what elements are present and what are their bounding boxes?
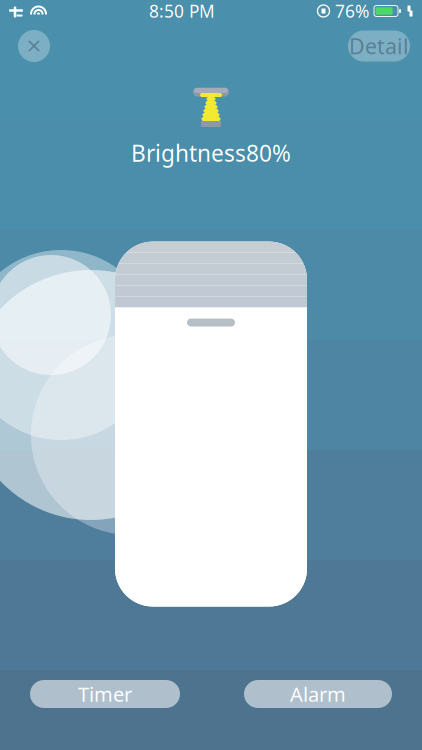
- staticText: Alarm: [290, 681, 346, 707]
- staticText: Detail: [349, 32, 409, 60]
- staticText: 8:50 PM: [149, 0, 215, 22]
- staticText: 76%: [335, 0, 369, 22]
- button[interactable]: Detail: [348, 30, 410, 61]
- button[interactable]: Timer: [30, 680, 180, 708]
- button[interactable]: Alarm: [244, 680, 392, 708]
- button[interactable]: Close: [12, 24, 56, 68]
- staticText: Timer: [78, 681, 132, 707]
- staticText: Brightness80%: [131, 138, 291, 168]
